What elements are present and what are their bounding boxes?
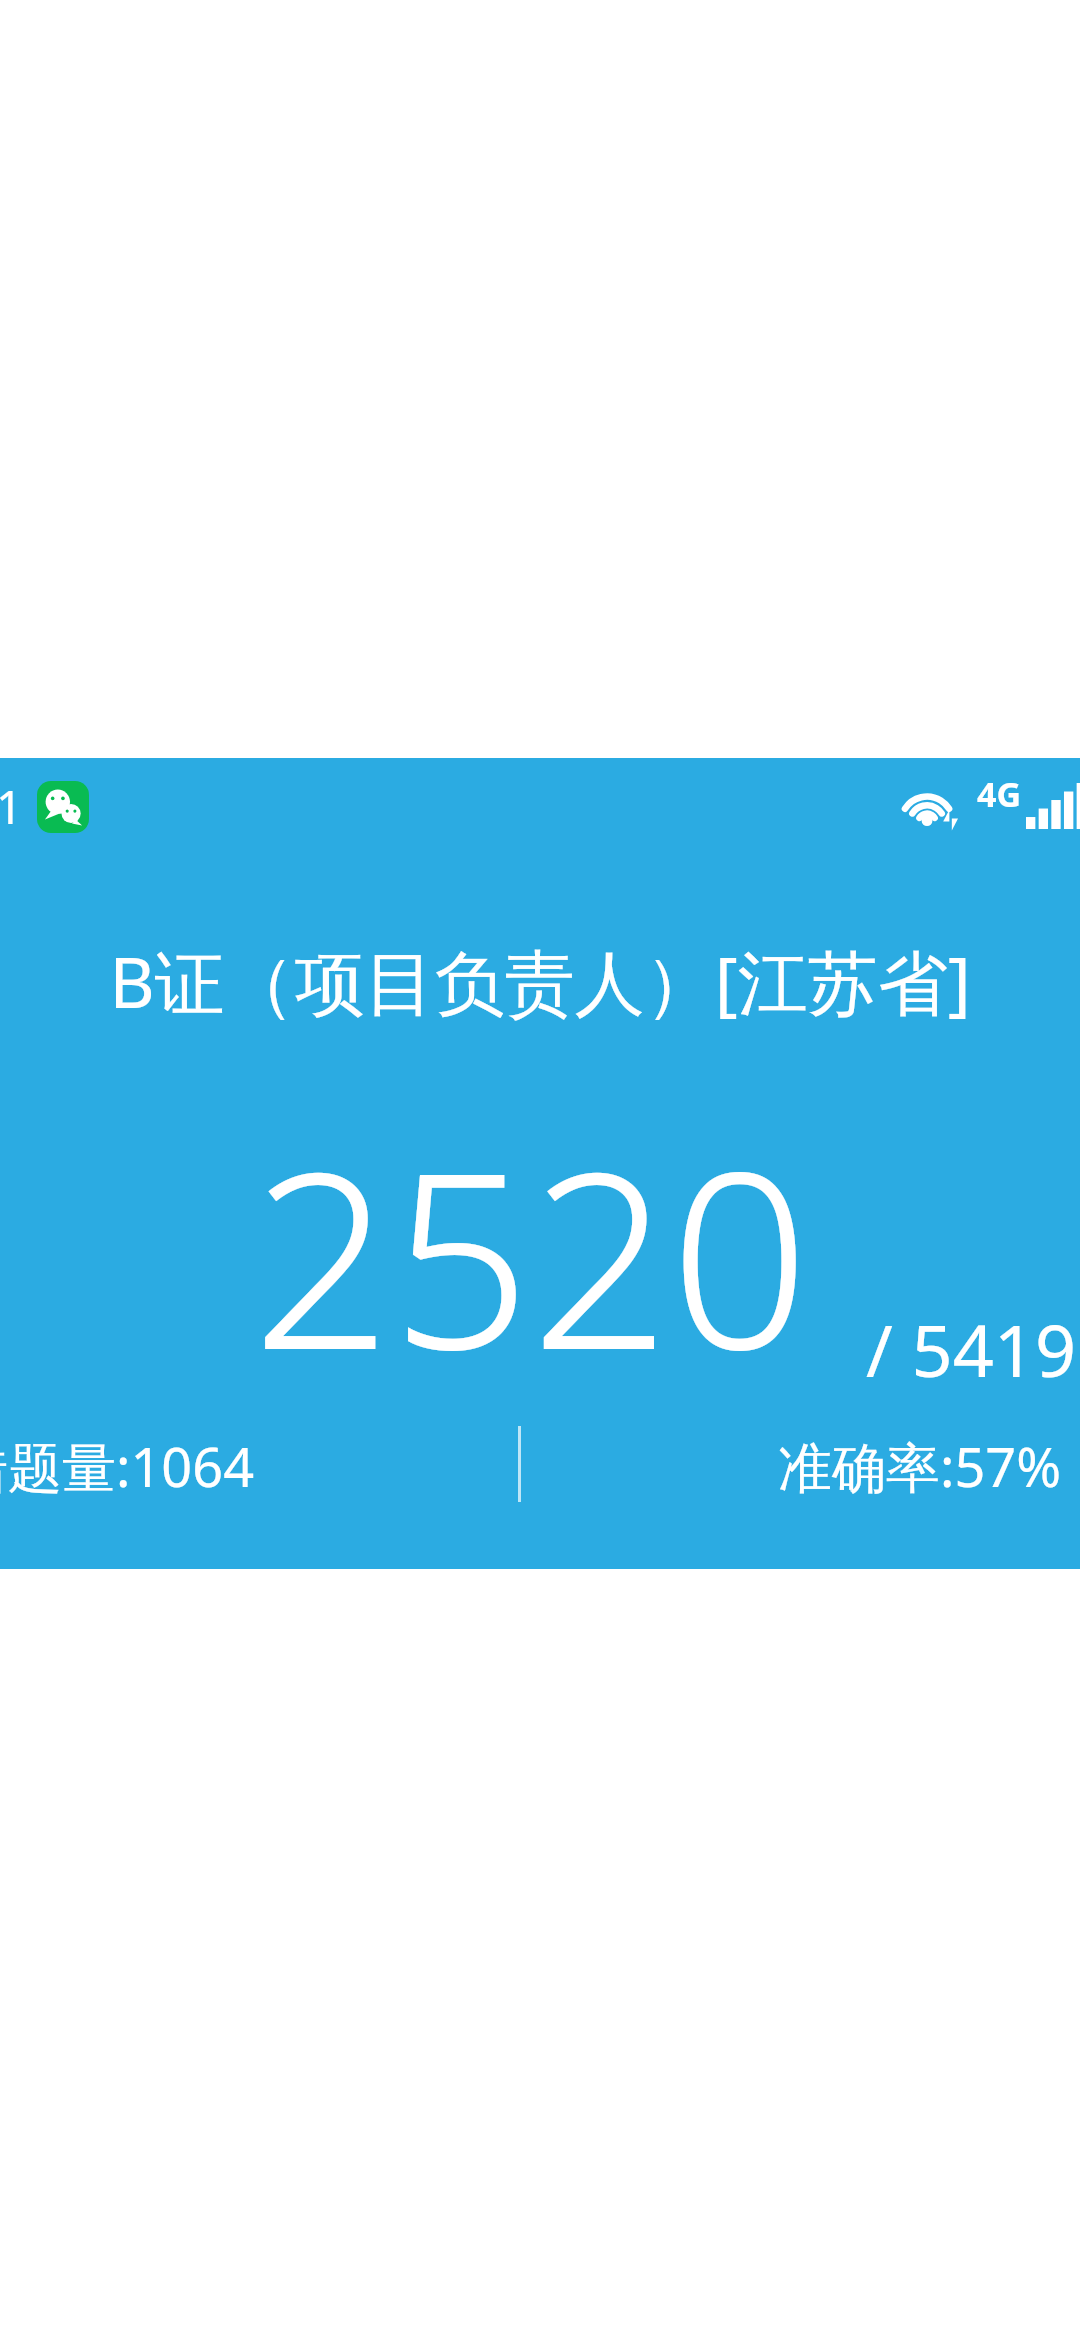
button[interactable]: 准确率:57% [778,1429,1062,1503]
other: Signal strength [1026,783,1080,829]
button[interactable]: 错题量:1064 [0,1429,255,1503]
staticText: 1 [0,775,23,838]
staticText: 4G [977,771,1022,817]
other: WeChat [37,781,89,833]
staticText: 2520 [252,1088,810,1420]
button[interactable]: B证（项目负责人）[江苏省] [0,933,1080,1029]
staticText: 错题量:1064 [0,1429,255,1503]
other: Wi-Fi [901,780,963,832]
staticText: B证（项目负责人）[江苏省] [109,933,971,1029]
staticText: / 5419 [866,1300,1077,1398]
staticText: 准确率:57% [778,1429,1062,1503]
